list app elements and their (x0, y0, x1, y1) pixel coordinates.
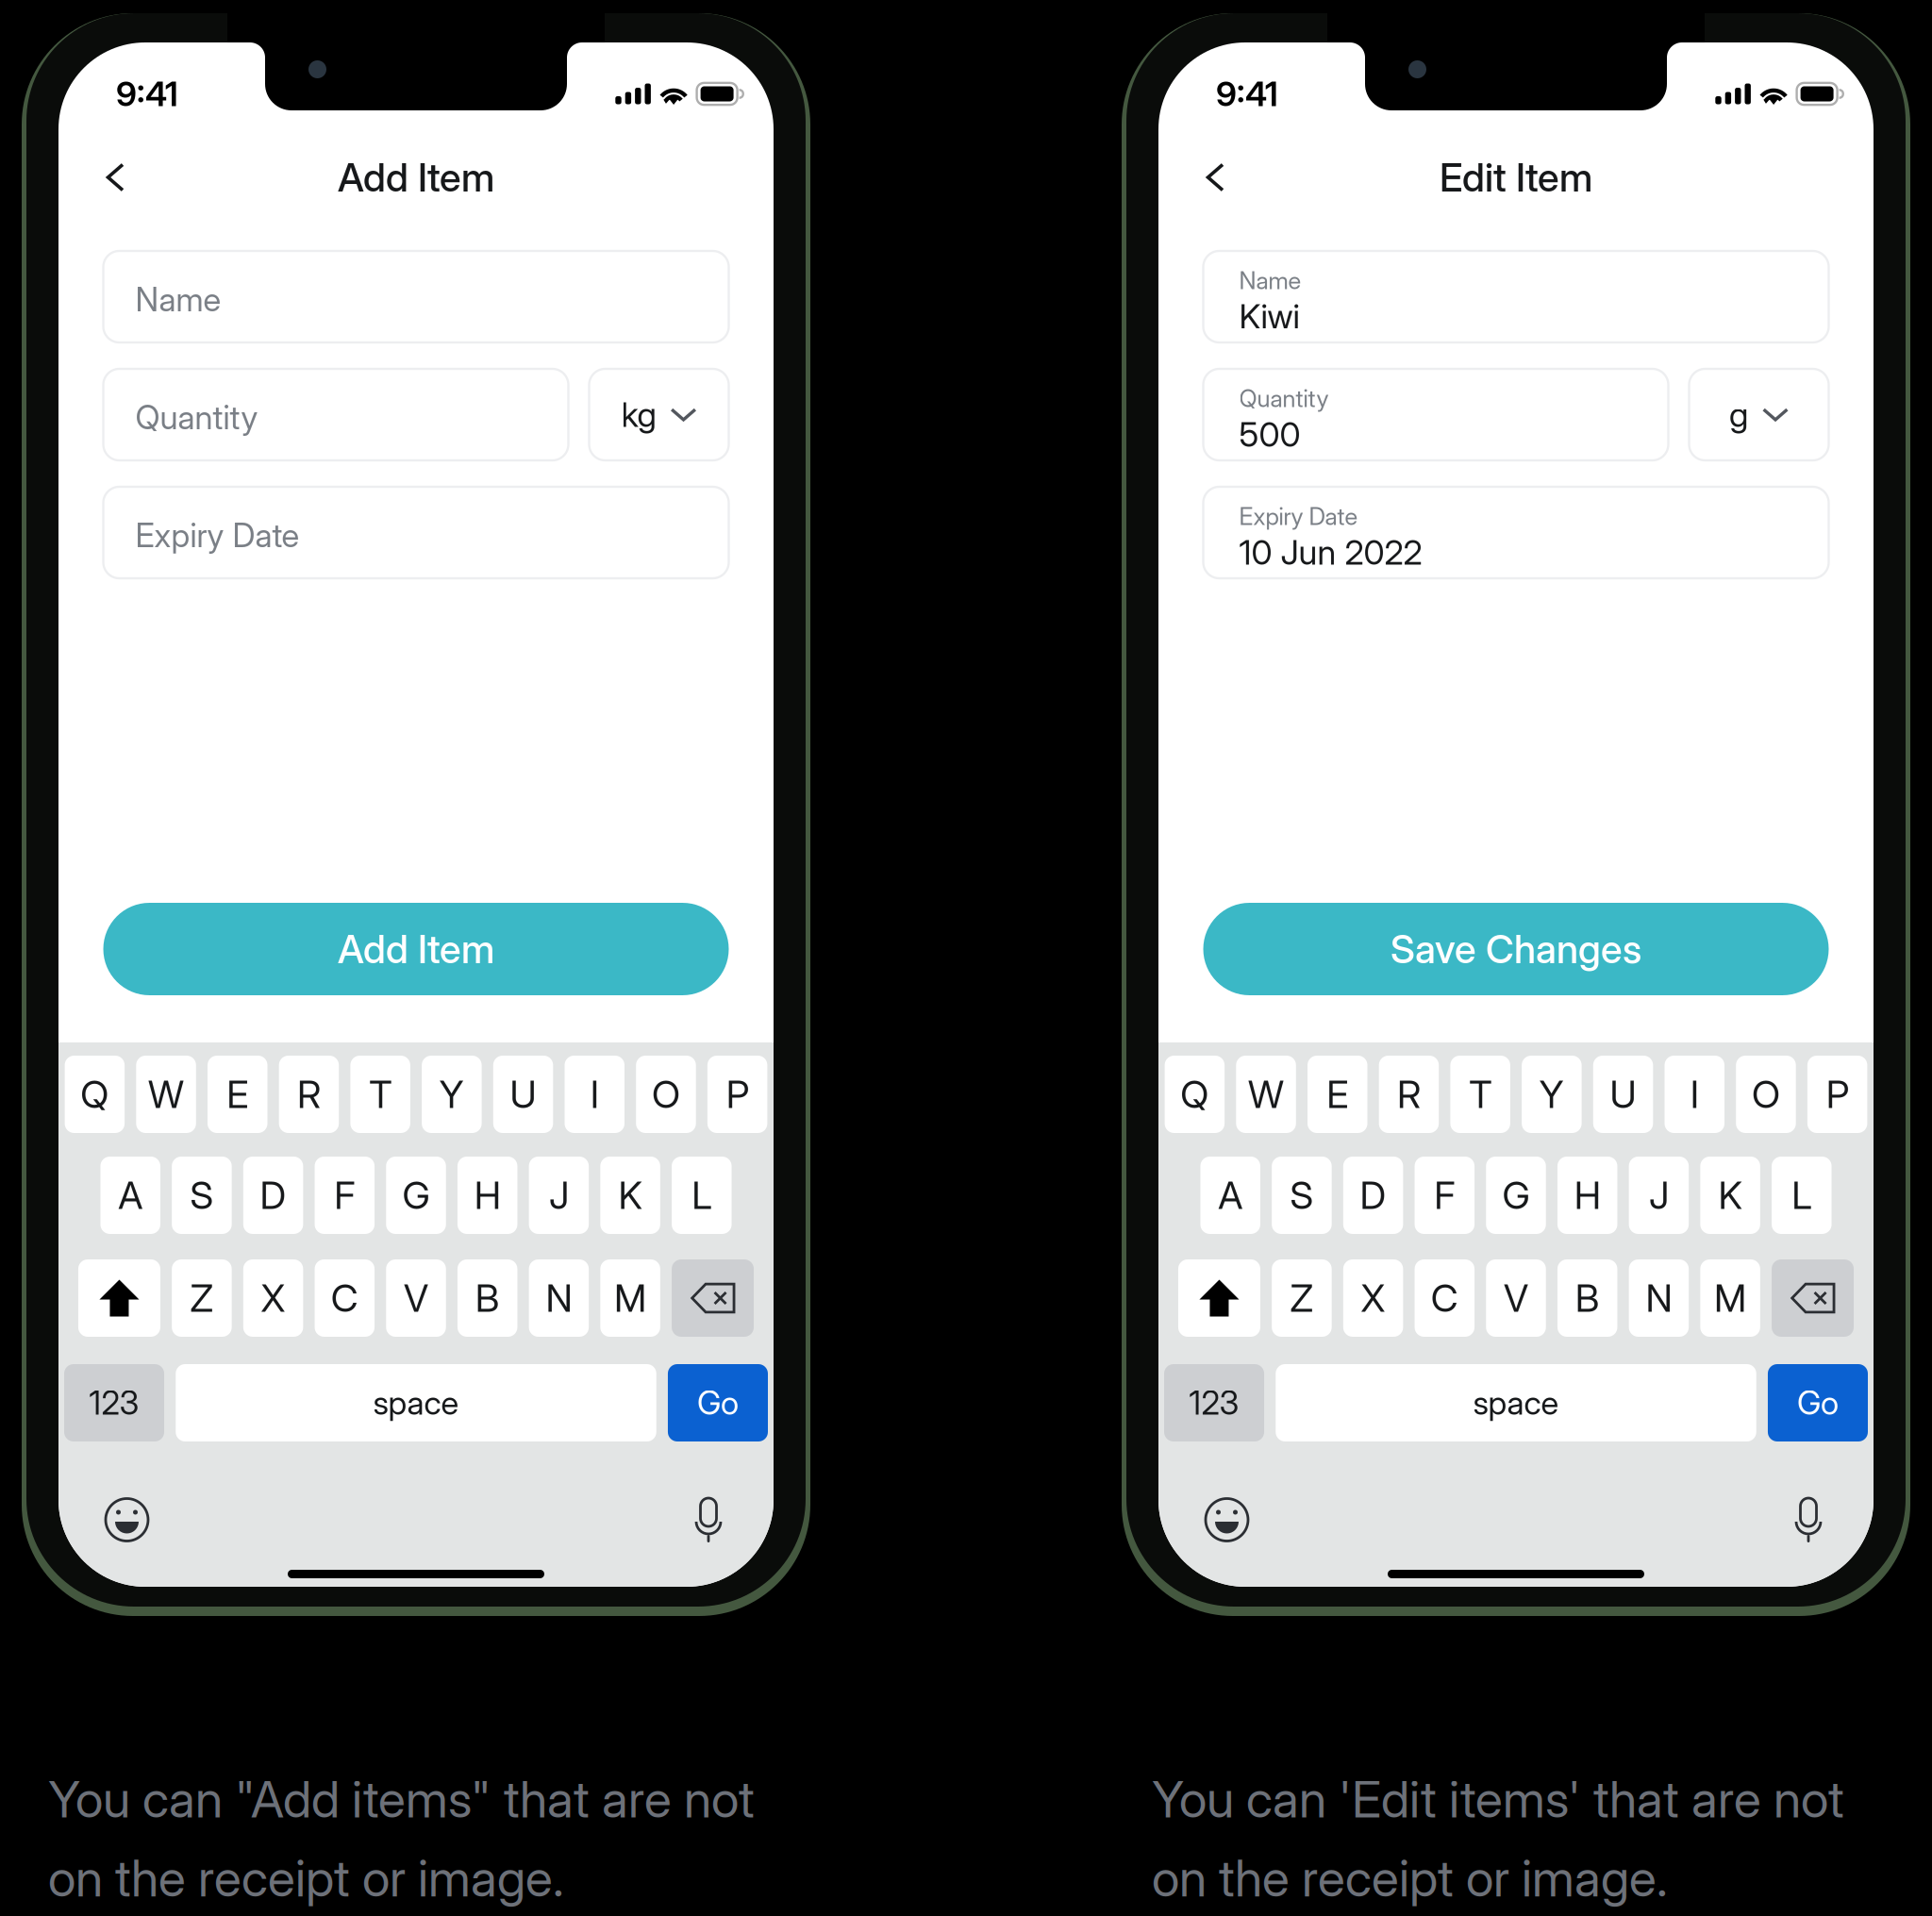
button[interactable]: Z (1272, 1259, 1332, 1337)
button[interactable]: 123 (64, 1364, 164, 1441)
button[interactable]: D (243, 1157, 303, 1234)
button[interactable]: H (1557, 1157, 1617, 1234)
staticText: Expiry Date (1239, 502, 1358, 531)
button[interactable]: J (529, 1157, 589, 1234)
button[interactable]: G (386, 1157, 446, 1234)
staticText: Save Changes (1391, 925, 1641, 973)
button[interactable]: V (386, 1259, 446, 1337)
button[interactable]: Dictate (1792, 1495, 1824, 1544)
staticText: V (404, 1275, 428, 1321)
button[interactable]: I (565, 1056, 625, 1133)
button[interactable]: E (1307, 1056, 1367, 1133)
button[interactable]: B (457, 1259, 517, 1337)
button[interactable]: Go (668, 1364, 768, 1441)
button[interactable]: Z (172, 1259, 232, 1337)
button[interactable]: U (493, 1056, 553, 1133)
button[interactable]: space (176, 1364, 656, 1441)
button[interactable]: F (315, 1157, 375, 1234)
button[interactable]: H (457, 1157, 517, 1234)
button[interactable]: g (1689, 369, 1829, 460)
staticText: Go (697, 1383, 739, 1423)
staticText: Z (1290, 1275, 1314, 1321)
button[interactable]: L (1772, 1157, 1832, 1234)
button[interactable]: V (1486, 1259, 1546, 1337)
staticText: 500 (1239, 414, 1300, 455)
button[interactable]: Back (1158, 135, 1257, 206)
button[interactable]: N (529, 1259, 589, 1337)
button[interactable]: N (1629, 1259, 1689, 1337)
button[interactable]: Add Item (103, 903, 729, 995)
button[interactable]: J (1629, 1157, 1689, 1234)
button[interactable]: T (350, 1056, 410, 1133)
button[interactable]: B (1557, 1259, 1617, 1337)
button[interactable]: O (636, 1056, 696, 1133)
button[interactable]: D (1343, 1157, 1403, 1234)
button[interactable]: K (600, 1157, 660, 1234)
button[interactable]: I (1665, 1056, 1724, 1133)
button[interactable]: P (1807, 1056, 1867, 1133)
staticText: A (1218, 1172, 1243, 1218)
staticText: Name (1239, 266, 1301, 295)
button[interactable]: 123 (1164, 1364, 1264, 1441)
button[interactable]: S (1272, 1157, 1332, 1234)
staticText: V (1504, 1275, 1528, 1321)
staticText: R (297, 1071, 321, 1117)
button[interactable]: M (600, 1259, 660, 1337)
staticText: B (475, 1275, 500, 1321)
button[interactable]: M (1700, 1259, 1760, 1337)
staticText: N (1646, 1275, 1672, 1321)
button[interactable]: R (279, 1056, 339, 1133)
button[interactable]: kg (589, 369, 729, 460)
button[interactable]: Back (58, 135, 157, 206)
staticText: Z (190, 1275, 214, 1321)
staticText: L (1792, 1172, 1812, 1218)
staticText: U (510, 1071, 536, 1117)
button[interactable]: C (315, 1259, 375, 1337)
button[interactable]: W (136, 1056, 196, 1133)
button[interactable]: K (1700, 1157, 1760, 1234)
button[interactable]: Shift (1178, 1259, 1260, 1337)
button[interactable]: L (672, 1157, 732, 1234)
button[interactable]: Go (1768, 1364, 1868, 1441)
button[interactable]: X (1343, 1259, 1403, 1337)
button[interactable]: Save Changes (1203, 903, 1829, 995)
button[interactable]: P (707, 1056, 767, 1133)
staticText: Y (440, 1071, 464, 1117)
button[interactable]: X (243, 1259, 303, 1337)
button[interactable]: O (1736, 1056, 1796, 1133)
button[interactable]: R (1379, 1056, 1439, 1133)
staticText: W (148, 1071, 184, 1117)
staticText: on the receipt or image. (48, 1848, 564, 1908)
button[interactable]: A (100, 1157, 160, 1234)
staticText: on the receipt or image. (1152, 1848, 1668, 1908)
staticText: K (1718, 1172, 1742, 1218)
button[interactable]: S (172, 1157, 232, 1234)
button[interactable]: Q (65, 1056, 125, 1133)
button[interactable]: space (1276, 1364, 1756, 1441)
button[interactable]: U (1593, 1056, 1653, 1133)
button[interactable]: Y (422, 1056, 482, 1133)
staticText: C (1431, 1275, 1458, 1321)
button[interactable]: F (1415, 1157, 1475, 1234)
button[interactable]: Dictate (692, 1495, 724, 1544)
button[interactable]: W (1236, 1056, 1296, 1133)
button[interactable]: A (1200, 1157, 1260, 1234)
button[interactable]: T (1450, 1056, 1510, 1133)
button[interactable]: E (208, 1056, 267, 1133)
button[interactable]: Emoji (1205, 1498, 1249, 1542)
staticText: X (261, 1275, 285, 1321)
button[interactable]: Q (1165, 1056, 1225, 1133)
button[interactable]: Shift (78, 1259, 160, 1337)
button[interactable]: Delete (1772, 1259, 1854, 1337)
button[interactable]: Delete (672, 1259, 754, 1337)
staticText: N (546, 1275, 572, 1321)
staticText: 10 Jun 2022 (1239, 532, 1422, 573)
button[interactable]: G (1486, 1157, 1546, 1234)
staticText: T (1469, 1071, 1492, 1117)
staticText: I (590, 1071, 599, 1117)
button[interactable]: C (1415, 1259, 1474, 1337)
button[interactable]: Y (1522, 1056, 1582, 1133)
staticText: space (373, 1383, 459, 1423)
staticText: J (549, 1172, 569, 1218)
button[interactable]: Emoji (105, 1498, 149, 1542)
